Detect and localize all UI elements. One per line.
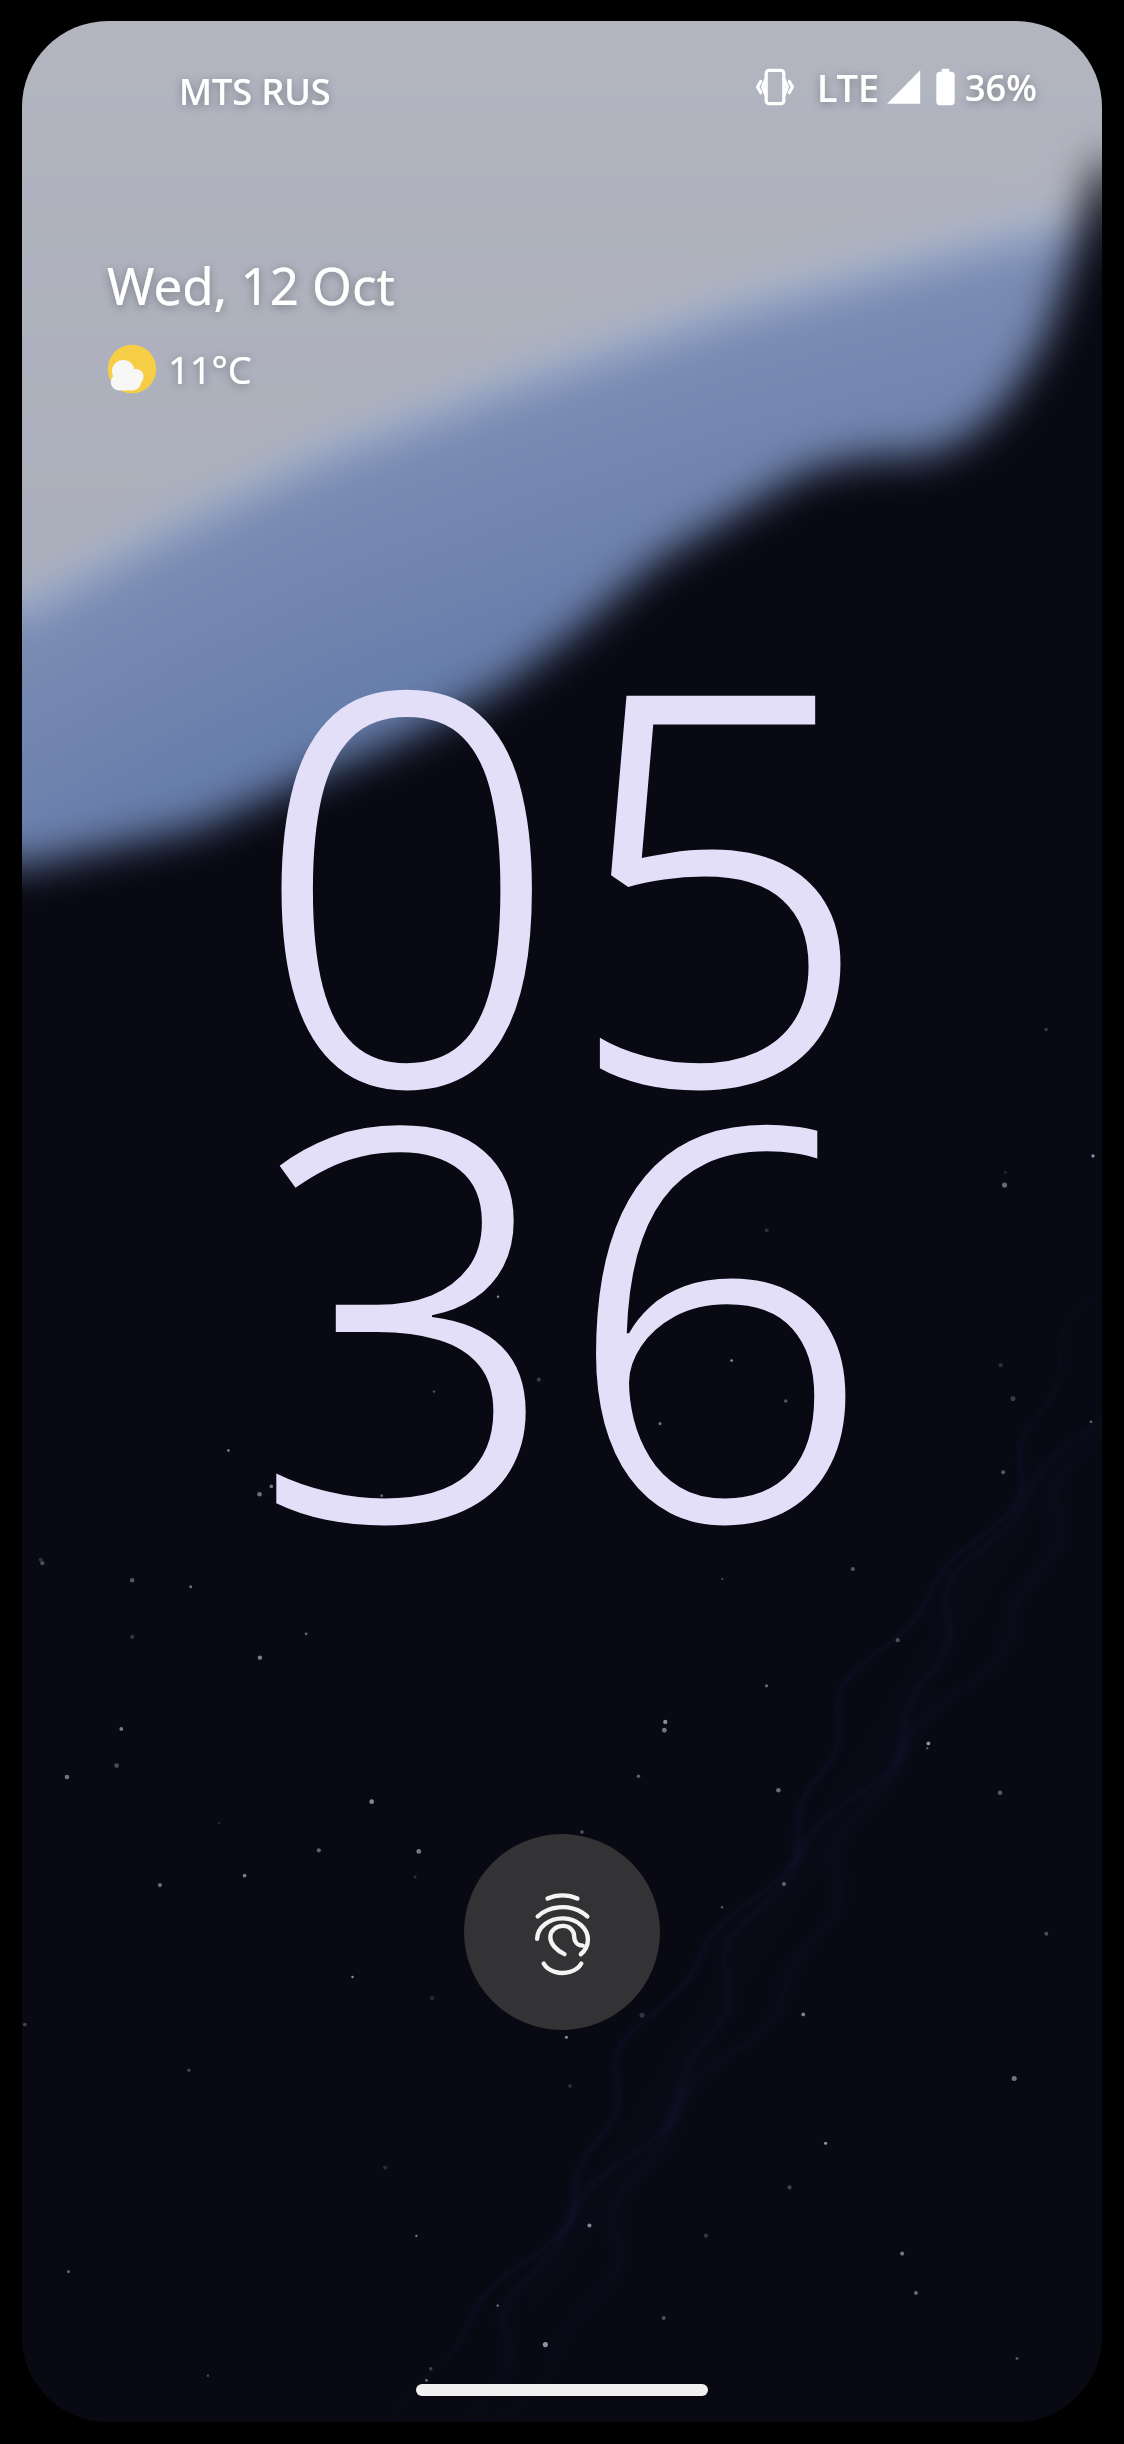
staticText: 11°C — [168, 343, 252, 395]
staticText: 05 — [251, 502, 874, 1244]
staticText: LTE — [817, 61, 880, 113]
staticText: 36% — [965, 63, 1037, 112]
staticText: Wed, 12 Oct — [107, 250, 395, 319]
staticText: 36 — [251, 937, 874, 1679]
staticText: MTS RUS — [179, 67, 331, 116]
button[interactable]: Unlock with fingerprint — [464, 1834, 660, 2030]
